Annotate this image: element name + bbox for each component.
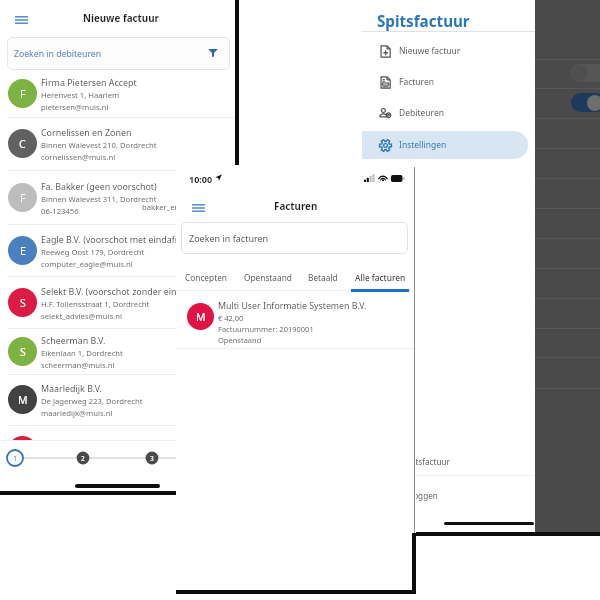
button[interactable]: S	[0, 276, 239, 328]
staticText: 3	[150, 454, 154, 463]
staticText: cornelissen@muis.nl	[41, 152, 116, 162]
staticText: Over Spitsfactuur	[383, 456, 450, 467]
staticText: De Jagerweg 223, Dordrecht	[41, 396, 143, 406]
staticText: Zoeken in debiteuren	[14, 48, 102, 60]
staticText: 10:00	[189, 173, 213, 185]
button[interactable]: Zoeken in facturen	[181, 222, 408, 254]
staticText: H.F. Tollensstraat 1, Dordrecht	[41, 299, 150, 309]
button[interactable]: Instellingen	[362, 131, 535, 159]
staticText: Firma Pietersen Accept	[41, 76, 137, 88]
staticText: Openstaand	[244, 272, 292, 283]
button[interactable]: M	[0, 374, 239, 426]
button[interactable]: Betaald	[291, 263, 355, 291]
staticText: scheerman@muis.nl	[41, 360, 115, 370]
staticText: computer_eagle@muis.nl	[41, 259, 133, 269]
staticText: S	[20, 296, 26, 310]
button[interactable]: Openstaand	[236, 263, 300, 291]
button[interactable]: Debiteuren	[362, 99, 535, 127]
staticText: 1	[13, 454, 18, 464]
staticText: Alle facturen	[355, 272, 406, 283]
staticText: Debiteuren	[399, 107, 444, 119]
staticText: Betaald	[308, 272, 338, 283]
staticText: Facturen	[399, 76, 434, 88]
button[interactable]: Zoeken in debiteuren	[7, 37, 230, 70]
staticText: C	[19, 137, 26, 151]
staticText: Openstaand	[218, 335, 262, 345]
staticText: Multi User Informatie Systemen B.V.	[218, 300, 367, 312]
staticText: bakker_en	[142, 202, 180, 212]
staticText: Facturen	[274, 200, 318, 213]
staticText: Binnen Walevest 311, Dordrecht	[41, 194, 157, 204]
staticText: Maarledijk B.V.	[41, 382, 102, 394]
staticText: Reeweg Oost 179, Dordrecht	[41, 247, 145, 257]
staticText: M	[18, 393, 28, 407]
button[interactable]: Filter	[205, 44, 221, 60]
staticText: Instellingen	[399, 139, 447, 151]
button[interactable]: Uitloggen	[362, 482, 535, 508]
button[interactable]: F	[0, 70, 239, 117]
staticText: 06-123456	[41, 206, 79, 216]
staticText: S	[20, 345, 26, 359]
staticText: Zoeken in facturen	[189, 232, 269, 244]
staticText: F	[20, 87, 26, 101]
staticText: Nieuwe factuur	[399, 45, 461, 57]
staticText: Spitsfactuur	[377, 11, 470, 32]
button[interactable]: Menu	[11, 10, 31, 30]
staticText: Herenvest 1, Haarlem	[41, 90, 120, 100]
button[interactable]: Toggle off	[571, 64, 600, 82]
button[interactable]: Over Spitsfactuur	[362, 448, 535, 474]
button[interactable]: F	[0, 170, 239, 224]
staticText: Nieuwe factuur	[83, 12, 159, 25]
staticText: Eikenlaan 1, Dordrecht	[41, 348, 123, 358]
staticText: maarledijk@muis.nl	[41, 408, 113, 418]
staticText: Cornelissen en Zonen	[41, 126, 132, 138]
staticText: Selekt B.V. (voorschot zonder eind	[41, 285, 182, 297]
staticText: Concepten	[185, 272, 227, 283]
button[interactable]: E	[0, 224, 239, 276]
button[interactable]: C	[0, 117, 239, 170]
staticText: M	[196, 310, 206, 324]
button[interactable]: Alle facturen	[348, 263, 412, 291]
button[interactable]: Concepten	[174, 263, 238, 291]
button[interactable]: S	[0, 328, 239, 374]
staticText: pietersen@muis.nl	[41, 102, 109, 112]
button[interactable]: Toggle on	[571, 93, 600, 112]
staticText: € 42,00	[218, 313, 244, 323]
staticText: Uitloggen	[400, 490, 438, 501]
button[interactable]: Facturen	[362, 68, 535, 96]
staticText: Factuurnummer: 20190001	[218, 324, 314, 334]
staticText: E	[20, 244, 26, 258]
staticText: 2	[81, 454, 85, 463]
staticText: Fa. Bakker (geen voorschot)	[41, 180, 157, 192]
staticText: Binnen Walevest 210, Dordrecht	[41, 140, 157, 150]
button[interactable]: Nieuwe factuur	[362, 37, 535, 65]
button[interactable]: Menu	[188, 198, 208, 218]
staticText: Scheerman B.V.	[41, 334, 106, 346]
staticText: selekt_advies@muis.nl	[41, 311, 122, 321]
button[interactable]: M	[176, 292, 416, 348]
staticText: Eagle B.V. (voorschot met eindafre	[41, 233, 184, 245]
staticText: F	[20, 191, 26, 205]
